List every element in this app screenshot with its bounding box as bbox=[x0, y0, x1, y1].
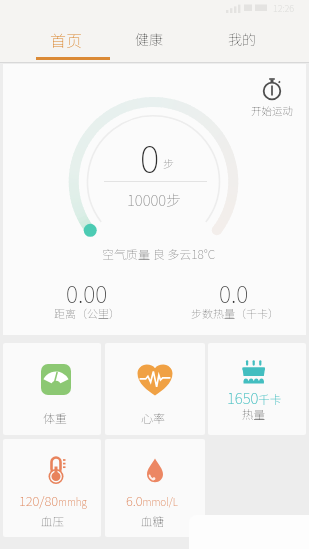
staticText: 步 bbox=[163, 155, 174, 171]
staticText: 首页 bbox=[50, 28, 83, 51]
button[interactable] bbox=[114, 20, 184, 58]
button[interactable] bbox=[26, 20, 106, 58]
button[interactable] bbox=[3, 343, 101, 435]
button[interactable] bbox=[3, 439, 101, 537]
staticText: 120/80mmhg bbox=[19, 491, 87, 510]
staticText: 12:26 bbox=[273, 2, 294, 15]
staticText: 血糖 bbox=[141, 513, 164, 530]
button[interactable] bbox=[207, 20, 277, 58]
staticText: 血压 bbox=[41, 513, 64, 530]
staticText: 1650千卡 bbox=[227, 387, 282, 409]
staticText: 热量 bbox=[242, 406, 265, 423]
staticText: 开始运动 bbox=[251, 103, 293, 118]
button[interactable] bbox=[105, 439, 205, 537]
staticText: 10000步 bbox=[127, 189, 182, 211]
staticText: 步数热量（千卡） bbox=[191, 305, 279, 321]
button[interactable] bbox=[105, 343, 205, 435]
staticText: 心率 bbox=[141, 409, 166, 426]
staticText: 0 bbox=[140, 130, 160, 184]
staticText: 0.00 bbox=[66, 276, 108, 309]
staticText: 6.0mmol/L bbox=[126, 491, 178, 510]
staticText: 空气质量 良 多云18°C bbox=[102, 245, 216, 262]
staticText: 我的 bbox=[228, 29, 256, 49]
staticText: 健康 bbox=[135, 29, 163, 49]
staticText: 距离（公里） bbox=[54, 305, 120, 321]
staticText: 体重 bbox=[43, 409, 68, 426]
staticText: 0.0 bbox=[219, 276, 249, 309]
button[interactable] bbox=[245, 76, 301, 120]
button[interactable] bbox=[208, 343, 306, 435]
